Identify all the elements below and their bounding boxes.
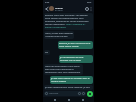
staticText: Merci, je vais bien regarder ! Pouvez-vo… xyxy=(45,32,73,38)
button[interactable]: More options xyxy=(89,7,93,11)
button[interactable]: Back xyxy=(44,6,49,11)
button[interactable]: Je vous remercie pour votre réponse. Je … xyxy=(44,85,93,90)
staticText: Je vous remercie pour votre réponse. Je … xyxy=(45,86,92,89)
staticText: Message xyxy=(49,92,59,95)
staticText: 46% xyxy=(87,1,92,4)
button[interactable]: Bonjour, je vous remercie pour votre ret… xyxy=(58,41,93,49)
button[interactable]: Home xyxy=(66,97,71,102)
staticText: Je vais vous mettre en relation avec le … xyxy=(51,77,92,83)
staticText: Marcel xyxy=(55,6,63,9)
staticText: en ligne xyxy=(55,9,63,12)
button[interactable]: Ok xyxy=(44,50,50,55)
button[interactable]: Je vais vous mettre en relation avec le … xyxy=(50,76,93,84)
button[interactable]: Send voice message xyxy=(87,91,93,97)
staticText: Je me permets de vous relancer sur ce su… xyxy=(60,56,92,62)
staticText: Ok xyxy=(45,51,48,54)
button[interactable]: Je me permets de vous relancer sur ce su… xyxy=(59,55,93,63)
button[interactable]: Merci, je vais bien regarder ! Pouvez-vo… xyxy=(44,31,74,39)
staticText: 9:26 xyxy=(45,1,50,4)
staticText: Merci de votre retour. Nous avons bien n… xyxy=(45,65,82,74)
button[interactable]: Bonjour Marc avec une faute : de débuter… xyxy=(44,13,93,30)
button[interactable]: Call xyxy=(84,6,89,11)
staticText: Bonjour Marc avec une faute : de débuter… xyxy=(45,14,92,29)
staticText: Bonjour, je vous remercie pour votre ret… xyxy=(59,42,92,48)
button[interactable]: Merci de votre retour. Nous avons bien n… xyxy=(44,64,83,75)
button[interactable]: Message xyxy=(44,91,86,96)
button[interactable]: Recents xyxy=(80,97,85,102)
button[interactable]: Back xyxy=(52,97,57,102)
